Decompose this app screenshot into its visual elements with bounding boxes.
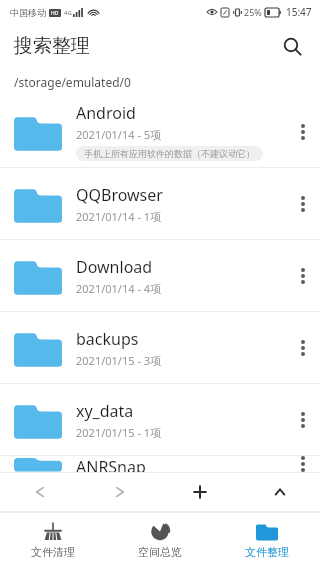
staticText: 15:47 [286,5,312,19]
staticText: 2021/01/15 - 3项 [76,353,162,368]
button[interactable]: More options [286,96,320,167]
button[interactable]: Add [160,472,240,512]
staticText: backups [76,328,139,350]
button[interactable]: ANRSnap [0,456,320,472]
button[interactable]: More options [286,312,320,383]
button[interactable]: More options [286,240,320,311]
staticText: 空间总览 [138,545,182,559]
button[interactable]: Download [0,240,320,311]
staticText: /storage/emulated/0 [14,74,131,90]
staticText: 中国移动 [10,7,46,18]
button[interactable]: Forward [80,472,160,512]
staticText: 文件清理 [31,545,75,559]
button[interactable]: 文件整理 [213,512,320,568]
staticText: Download [76,256,153,278]
staticText: 2021/01/14 - 4项 [76,281,162,296]
button[interactable]: More options [286,456,320,472]
button[interactable]: 空间总览 [106,512,213,568]
staticText: HD [51,10,59,17]
button[interactable]: Android [0,96,320,167]
button[interactable]: xy_data [0,384,320,455]
button[interactable]: QQBrowser [0,168,320,239]
staticText: 文件整理 [245,545,289,559]
button[interactable]: Collapse [240,472,320,512]
staticText: 25% [244,6,262,18]
staticText: 手机上所有应用软件的数据（不建议动它） [84,148,255,159]
button[interactable]: More options [286,384,320,455]
staticText: 2021/01/15 - 1项 [76,425,162,440]
button[interactable]: More options [286,168,320,239]
staticText: QQBrowser [76,184,163,206]
button[interactable]: backups [0,312,320,383]
staticText: xy_data [76,400,134,422]
staticText: 2021/01/14 - 1项 [76,209,162,224]
button[interactable]: 文件清理 [0,512,106,568]
button[interactable]: Back [0,472,80,512]
button[interactable]: Search [272,26,312,66]
staticText: 搜索整理 [14,34,90,58]
staticText: Android [76,102,136,124]
staticText: ANRSnap [76,456,146,472]
staticText: 4G [64,9,72,17]
staticText: 2021/01/14 - 5项 [76,127,162,142]
